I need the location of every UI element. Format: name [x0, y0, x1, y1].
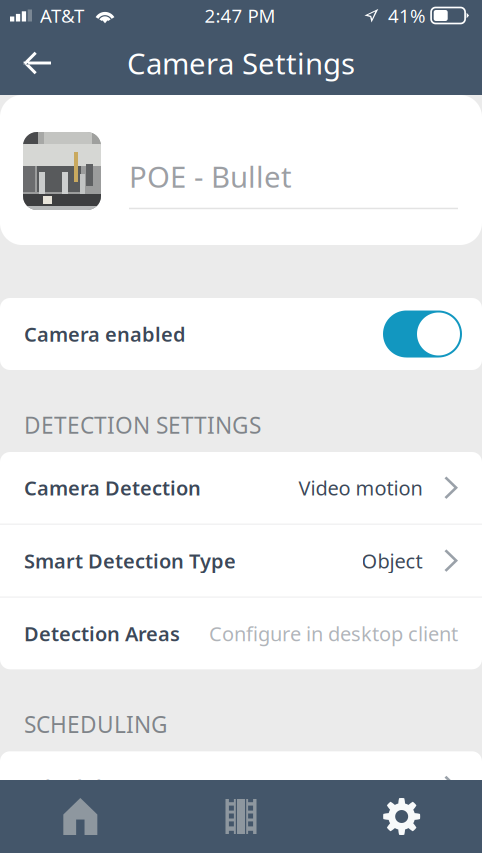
staticText: Object: [361, 547, 422, 574]
staticText: 2:47 PM: [205, 3, 276, 28]
button[interactable]: Smart Detection Type: [0, 525, 482, 596]
staticText: Video motion: [298, 474, 422, 501]
button[interactable]: Camera Detection: [0, 452, 482, 523]
staticText: Camera Detection: [24, 474, 201, 501]
button[interactable]: Back: [0, 32, 74, 94]
staticText: Configure in desktop client: [209, 620, 458, 647]
button[interactable]: Recordings: [161, 780, 321, 853]
staticText: DETECTION SETTINGS: [24, 410, 261, 440]
staticText: Smart Detection Type: [24, 547, 236, 574]
button[interactable]: Schedules: [0, 751, 482, 823]
button[interactable]: Camera enabled: [383, 310, 462, 357]
staticText: AT&T: [40, 3, 84, 28]
staticText: SCHEDULING: [24, 709, 168, 739]
staticText: Camera Settings: [127, 43, 355, 82]
staticText: 41%: [388, 3, 426, 28]
staticText: Camera enabled: [24, 321, 186, 347]
staticText: Detection Areas: [24, 620, 180, 647]
button[interactable]: Settings: [321, 780, 482, 853]
staticText: POE - Bullet: [129, 157, 292, 196]
staticText: Schedules: [24, 774, 124, 800]
button[interactable]: Home: [0, 780, 161, 853]
button[interactable]: Detection Areas: [0, 598, 482, 669]
